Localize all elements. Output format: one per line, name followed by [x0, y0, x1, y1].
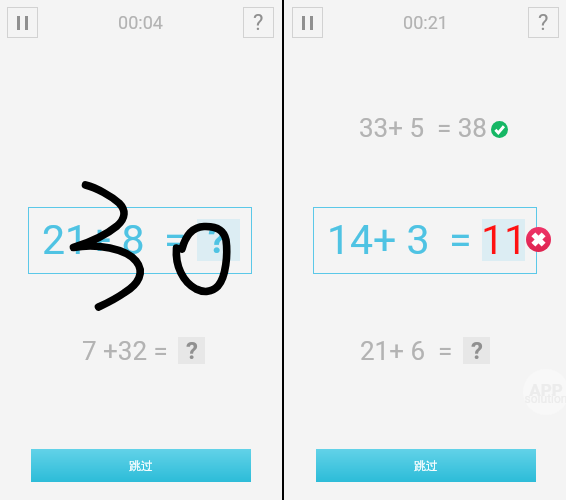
staticText: 00:21 — [285, 12, 566, 33]
staticText: 11 — [481, 216, 528, 264]
button[interactable]: 跳过 — [316, 449, 536, 482]
staticText: 00:04 — [0, 12, 281, 33]
staticText: 跳过 — [414, 458, 438, 473]
staticText: = — [164, 216, 187, 264]
staticText: 21+ 6 = — [360, 336, 459, 366]
staticText: = — [449, 216, 472, 264]
staticText: 21+ 8 — [42, 216, 145, 264]
staticText: ? — [208, 219, 227, 262]
staticText: ? — [186, 337, 198, 364]
button[interactable]: Help — [243, 7, 274, 38]
staticText: 7 +32 = — [82, 336, 175, 366]
button[interactable]: Help — [528, 7, 559, 38]
staticText: 33+ 5 = 38 — [359, 113, 487, 143]
staticText: ? — [253, 10, 264, 36]
staticText: solution — [523, 392, 566, 406]
button[interactable]: Pause — [292, 7, 323, 38]
button[interactable]: Pause — [7, 7, 38, 38]
staticText: ? — [471, 337, 483, 364]
staticText: 14+ 3 — [327, 216, 430, 264]
button[interactable]: 跳过 — [31, 449, 251, 482]
staticText: 跳过 — [129, 458, 153, 473]
staticText: ? — [538, 10, 549, 36]
staticText: APP — [523, 380, 566, 400]
